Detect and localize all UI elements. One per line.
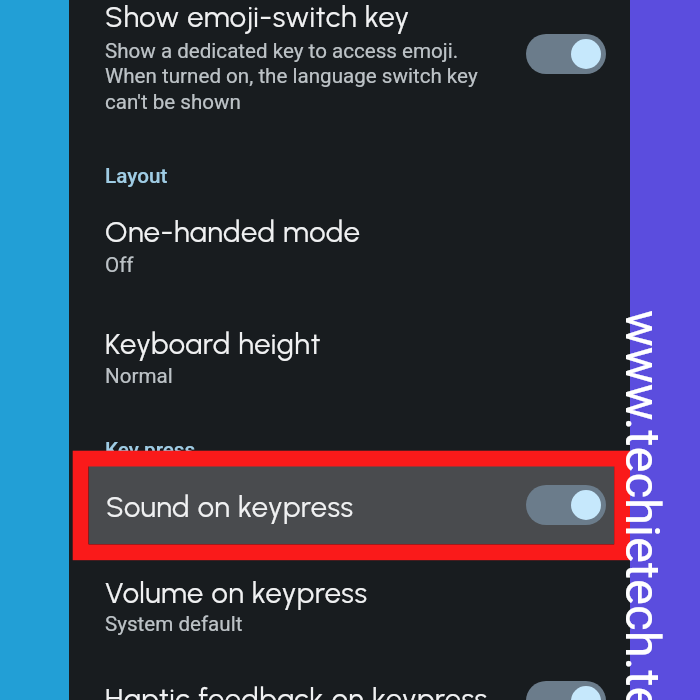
- button[interactable]: Sound on keypress: [89, 466, 614, 544]
- staticText: Keyboard height: [105, 326, 322, 361]
- staticText: One-handed mode: [105, 214, 361, 249]
- staticText: Off: [105, 253, 134, 277]
- button[interactable]: One-handed mode: [69, 209, 630, 291]
- staticText: Normal: [105, 364, 173, 388]
- button[interactable]: Show emoji-switch key toggle: [526, 34, 606, 74]
- button[interactable]: Show emoji-switch key: [69, 0, 630, 126]
- staticText: Show emoji-switch key: [105, 0, 410, 34]
- staticText: Volume on keypress: [105, 575, 368, 610]
- staticText: Sound on keypress: [106, 489, 354, 524]
- button[interactable]: Sound on keypress toggle: [526, 485, 606, 525]
- button[interactable]: Volume on keypress: [69, 570, 630, 652]
- staticText: Show a dedicated key to access emoji. Wh…: [105, 39, 478, 114]
- staticText: System default: [105, 612, 243, 636]
- staticText: www.techietech.tech: [614, 310, 671, 700]
- button[interactable]: Haptic feedback on keypress toggle: [526, 681, 606, 700]
- staticText: Key press: [105, 438, 196, 462]
- staticText: Layout: [105, 164, 168, 188]
- button[interactable]: Haptic feedback on keypress: [69, 676, 630, 700]
- button[interactable]: Keyboard height: [69, 321, 630, 403]
- staticText: Haptic feedback on keypress: [105, 681, 488, 700]
